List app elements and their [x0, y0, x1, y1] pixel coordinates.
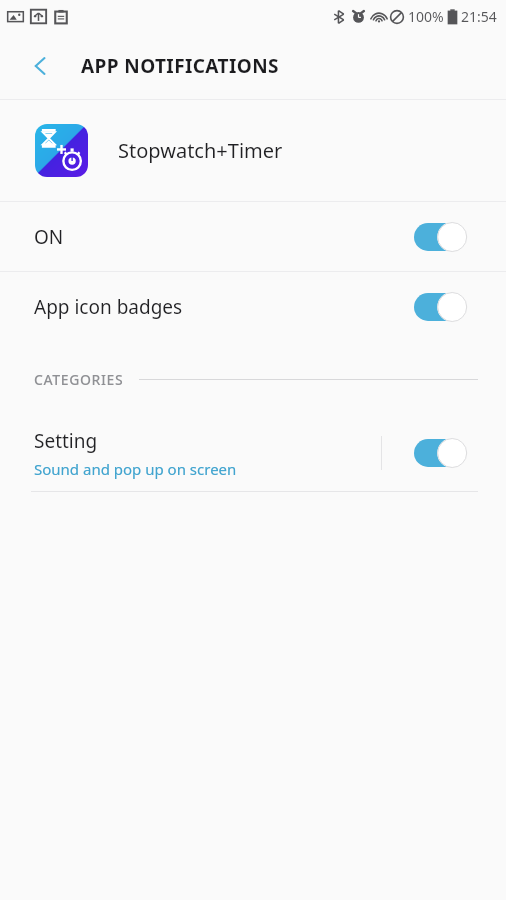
button[interactable]: Toggle, on — [414, 222, 464, 252]
button[interactable]: Toggle, on — [414, 292, 464, 322]
button[interactable]: Toggle, on — [414, 438, 464, 468]
button[interactable]: Navigate up — [18, 43, 64, 89]
button[interactable]: Setting — [0, 415, 506, 491]
button[interactable]: ON — [0, 202, 506, 271]
button[interactable]: App icon badges — [0, 272, 506, 341]
staticText: 21:54 — [461, 7, 497, 26]
staticText: CATEGORIES — [34, 370, 124, 389]
button[interactable]: Stopwatch+Timer — [0, 100, 506, 201]
staticText: Setting — [34, 428, 98, 454]
staticText: App icon badges — [34, 294, 414, 320]
staticText: Stopwatch+Timer — [118, 137, 283, 164]
staticText: ON — [34, 224, 414, 250]
staticText: Sound and pop up on screen — [34, 459, 237, 479]
staticText: APP NOTIFICATIONS — [81, 53, 279, 79]
staticText: 100% — [408, 7, 444, 26]
